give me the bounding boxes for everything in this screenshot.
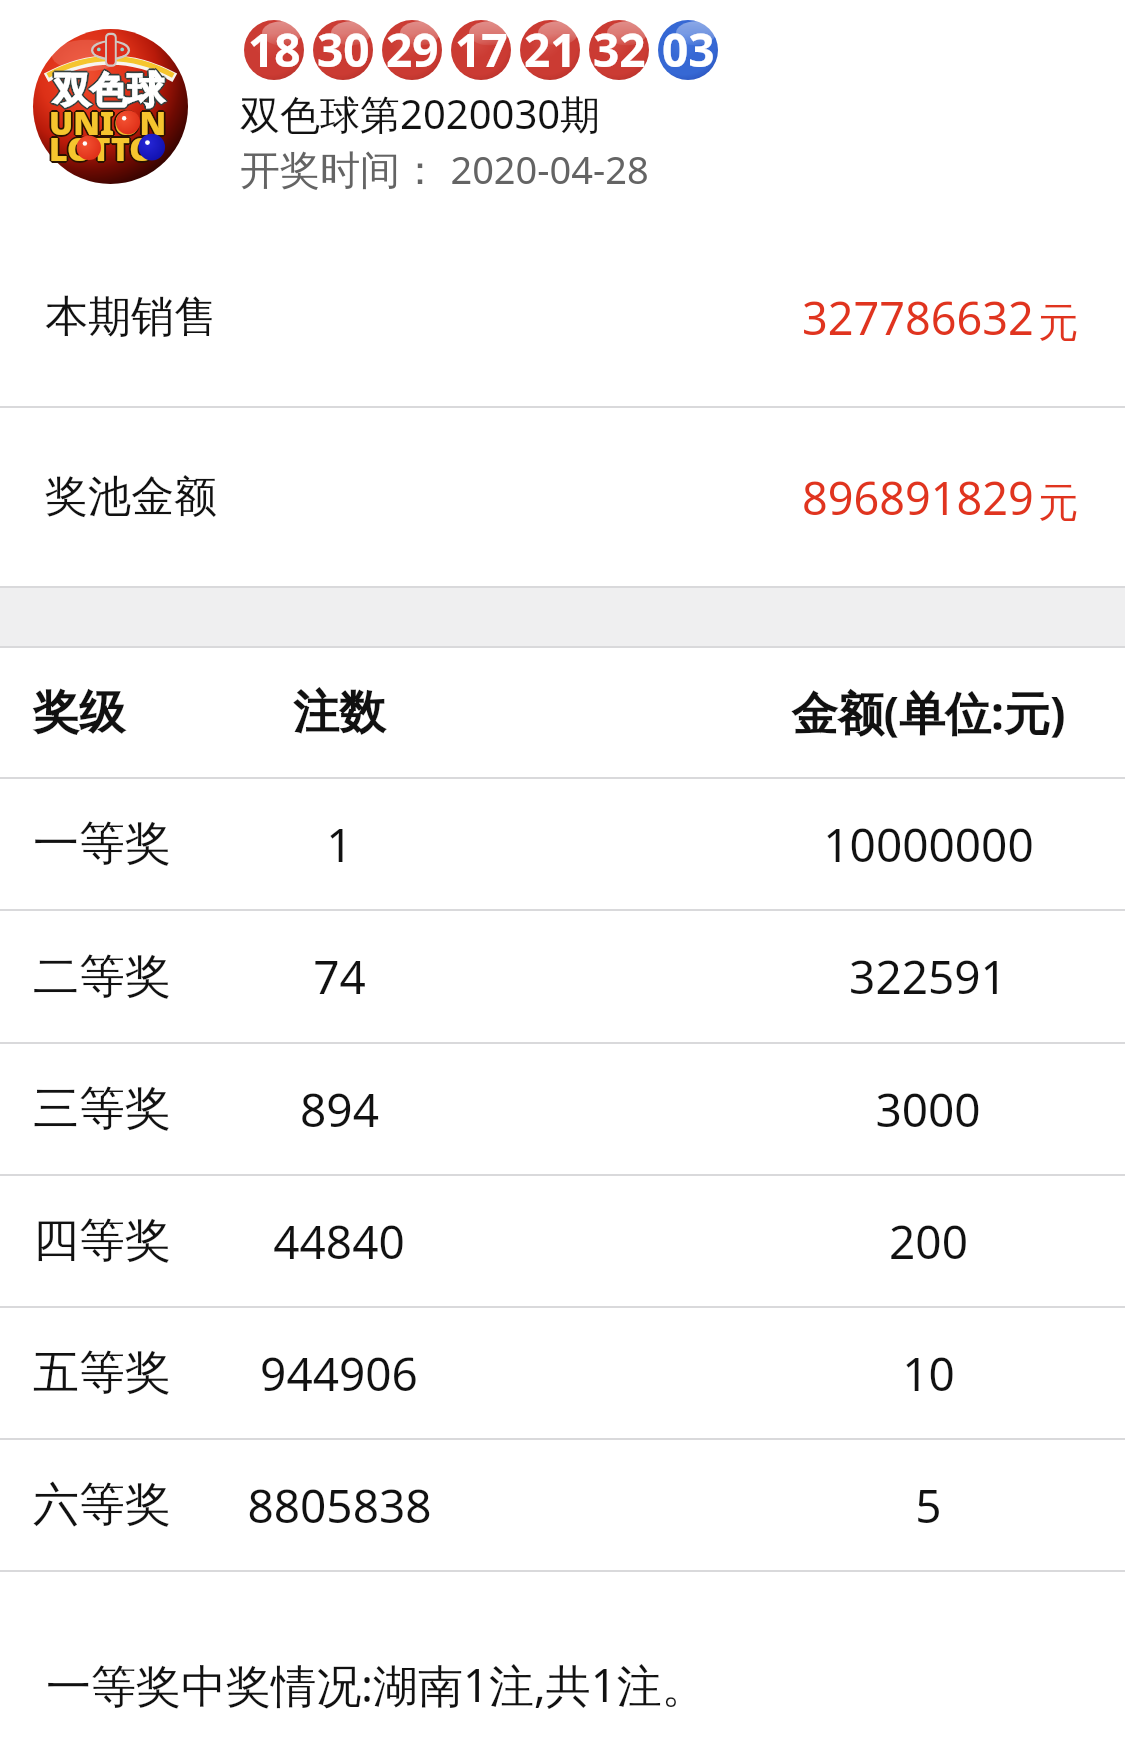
staticText: LOTTO [51,127,157,171]
staticText: 双色球 [53,65,164,112]
staticText: UNION [47,101,165,145]
staticText: 03 [662,18,715,78]
button[interactable]: 奖级 [0,648,1125,777]
staticText: LOTTO [47,127,153,171]
staticText: LOTTO [48,128,154,172]
staticText: 944906 [260,1342,418,1405]
staticText: 双色球 [51,67,162,114]
staticText: 10 [902,1342,955,1405]
staticText: 1 [326,813,353,876]
staticText: 开奖时间： 2020-04-28 [240,141,649,196]
staticText: 一等奖 [33,815,171,873]
staticText: UNION [50,102,168,146]
button[interactable]: 二等奖 [0,911,1125,1042]
staticText: 奖级 [33,684,125,742]
staticText: 元 [1038,297,1078,347]
staticText: 双色球第2020030期 [240,86,601,141]
staticText: 200 [889,1210,968,1273]
staticText: 金额(单位:元) [791,681,1066,744]
staticText: LOTTO [50,128,156,172]
staticText: 双色球 [53,67,164,114]
staticText: 32 [593,18,646,78]
staticText: 894 [300,1078,379,1141]
staticText: 18 [248,18,301,78]
staticText: 奖池金额 [45,470,217,524]
staticText: 44840 [273,1210,405,1273]
staticText: 双色球 [54,68,165,115]
staticText: 双色球 [55,67,166,114]
staticText: LOTTO [50,126,156,170]
staticText: UNION [50,100,168,144]
button[interactable]: 双色球 Union Lotto [0,0,1125,228]
staticText: 四等奖 [33,1212,171,1270]
staticText: 17 [455,18,508,78]
staticText: 896891829 [802,467,1034,528]
staticText: LOTTO [49,125,155,169]
staticText: UNION [48,102,166,146]
staticText: 双色球 [52,66,163,113]
staticText: 二等奖 [33,948,171,1006]
staticText: 3000 [875,1078,981,1141]
staticText: 双色球 [53,69,164,116]
staticText: 双色球 [52,68,163,115]
staticText: 327786632 [802,287,1034,348]
button[interactable]: 一等奖 [0,779,1125,909]
button[interactable]: 三等奖 [0,1044,1125,1174]
staticText: UNION [49,99,167,143]
staticText: UNION [51,101,169,145]
staticText: 双色球 [54,66,165,113]
staticText: UNION [49,101,167,145]
button[interactable]: 本期销售 [0,228,1125,406]
staticText: 30 [317,18,370,78]
staticText: 本期销售 [45,290,217,344]
other: 双色球 Union Lotto [33,29,188,184]
button[interactable]: 五等奖 [0,1308,1125,1438]
button[interactable]: 双色球 Union Lotto [33,29,188,184]
staticText: 六等奖 [33,1476,171,1534]
staticText: 元 [1038,477,1078,527]
staticText: LOTTO [49,129,155,173]
button[interactable]: 四等奖 [0,1176,1125,1306]
staticText: UNION [49,103,167,147]
staticText: LOTTO [49,127,155,171]
staticText: 注数 [293,684,385,742]
staticText: 21 [524,18,577,78]
staticText: LOTTO [48,126,154,170]
staticText: 74 [313,945,366,1008]
staticText: 8805838 [247,1474,432,1537]
staticText: 三等奖 [33,1080,171,1138]
button[interactable]: 奖池金额 [0,408,1125,586]
staticText: 10000000 [823,813,1034,876]
staticText: 五等奖 [33,1344,171,1402]
staticText: UNION [48,100,166,144]
staticText: 322591 [849,945,1007,1008]
button[interactable]: 六等奖 [0,1440,1125,1570]
staticText: 5 [915,1474,942,1537]
staticText: 一等奖中奖情况:湖南1注,共1注。 [46,1654,707,1715]
staticText: 29 [386,18,439,78]
